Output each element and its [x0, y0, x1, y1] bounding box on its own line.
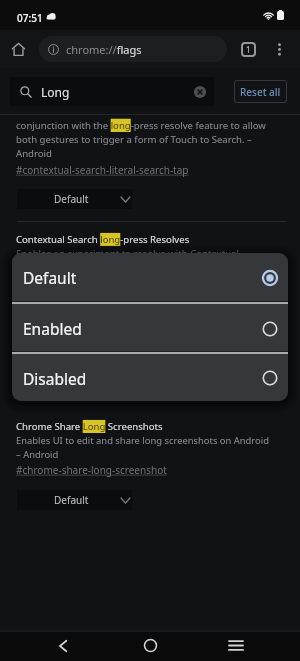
button[interactable]: Clear search — [188, 80, 212, 104]
staticText: Reset all — [240, 85, 281, 99]
button[interactable]: Long — [10, 77, 214, 106]
button[interactable]: Enabled — [12, 305, 288, 352]
button[interactable]: Default — [12, 253, 288, 302]
staticText: conjunction with the long-press resolve … — [16, 119, 266, 160]
button[interactable]: Reset all — [234, 80, 287, 103]
button[interactable]: Back — [45, 630, 81, 661]
button[interactable]: Default — [17, 490, 132, 510]
button[interactable]: Home — [5, 36, 31, 62]
button[interactable]: Default — [17, 189, 132, 209]
staticText: 1 — [246, 44, 251, 55]
staticText: Long — [41, 84, 70, 100]
staticText: Contextual Search long-press Resolves — [16, 233, 190, 246]
staticText: #chrome-share-long-screenshot — [16, 463, 167, 477]
staticText: Chrome Share Long Screenshots — [16, 420, 163, 433]
button[interactable]: Tabs — [235, 36, 261, 62]
staticText: Default — [23, 267, 77, 288]
staticText: 07:51 — [17, 11, 43, 25]
staticText: Enabled — [23, 318, 82, 339]
staticText: Default — [54, 192, 89, 206]
button[interactable]: Home — [132, 630, 168, 661]
button[interactable]: Disabled — [12, 355, 288, 401]
staticText: Enables UI to edit and share long screen… — [16, 434, 272, 461]
button[interactable]: Recent apps — [218, 630, 254, 661]
staticText: chrome://flags — [66, 42, 142, 57]
button[interactable]: chrome://flags — [39, 36, 227, 62]
staticText: Enables an experiment to resolve with Co… — [16, 247, 266, 274]
button[interactable]: More options — [267, 37, 291, 61]
staticText: #contextual-search-literal-search-tap — [16, 163, 189, 177]
staticText: Default — [54, 493, 89, 507]
staticText: Disabled — [23, 368, 87, 389]
